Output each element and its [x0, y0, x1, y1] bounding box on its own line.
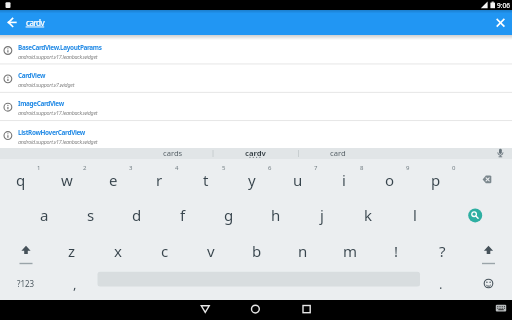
- staticText: BaseCardView.LayoutParams: [18, 43, 102, 52]
- staticText: y: [248, 170, 256, 190]
- staticText: z: [68, 241, 76, 261]
- button[interactable]: [470, 270, 506, 296]
- button[interactable]: [0, 120, 512, 148]
- button[interactable]: [0, 35, 512, 63]
- staticText: x: [114, 241, 122, 261]
- staticText: s: [87, 205, 95, 225]
- button[interactable]: [466, 162, 508, 192]
- staticText: 3: [129, 164, 133, 172]
- button[interactable]: i: [321, 162, 367, 198]
- button[interactable]: [468, 236, 508, 266]
- button[interactable]: [2, 12, 22, 33]
- button[interactable]: j: [299, 197, 345, 233]
- staticText: ?123: [17, 278, 35, 289]
- staticText: card: [330, 148, 346, 158]
- button[interactable]: t: [183, 162, 229, 198]
- button[interactable]: [490, 12, 511, 33]
- staticText: cardv: [26, 17, 45, 28]
- button[interactable]: f: [160, 197, 206, 233]
- button[interactable]: m: [327, 233, 373, 269]
- button[interactable]: ,: [60, 273, 90, 295]
- staticText: 5: [222, 164, 226, 172]
- button[interactable]: x: [95, 233, 141, 269]
- button[interactable]: [240, 300, 270, 320]
- staticText: 9:06: [497, 1, 510, 10]
- button[interactable]: [0, 64, 512, 92]
- button[interactable]: n: [280, 233, 326, 269]
- staticText: c: [161, 241, 169, 261]
- button[interactable]: q: [0, 162, 44, 198]
- staticText: android.support.v17.leanback.widget: [18, 138, 98, 145]
- button[interactable]: card: [298, 148, 378, 158]
- staticText: ?: [439, 241, 446, 261]
- staticText: m: [343, 241, 358, 261]
- staticText: j: [320, 205, 324, 225]
- staticText: k: [364, 205, 373, 225]
- staticText: 6: [268, 164, 272, 172]
- staticText: cardv: [245, 148, 266, 158]
- button[interactable]: v: [188, 233, 234, 269]
- button[interactable]: d: [114, 197, 160, 233]
- staticText: 4: [175, 164, 179, 172]
- button[interactable]: p: [413, 162, 459, 198]
- staticText: ImageCardView: [18, 99, 64, 108]
- staticText: ListRowHoverCardView: [18, 128, 85, 137]
- staticText: d: [132, 205, 142, 225]
- staticText: android.support.v17.leanback.widget: [18, 109, 98, 116]
- staticText: 1: [37, 164, 41, 172]
- staticText: 8: [360, 164, 364, 172]
- staticText: r: [156, 170, 163, 190]
- button[interactable]: l: [392, 197, 438, 233]
- staticText: u: [293, 170, 303, 190]
- staticText: 7: [314, 164, 318, 172]
- button[interactable]: .: [426, 273, 456, 295]
- button[interactable]: h: [253, 197, 299, 233]
- staticText: 9: [406, 164, 410, 172]
- button[interactable]: z: [49, 233, 95, 269]
- button[interactable]: b: [234, 233, 280, 269]
- staticText: l: [413, 205, 417, 225]
- button[interactable]: [6, 236, 46, 266]
- button[interactable]: o: [367, 162, 413, 198]
- button[interactable]: a: [21, 197, 67, 233]
- staticText: o: [385, 170, 395, 190]
- staticText: e: [109, 170, 118, 190]
- button[interactable]: w: [44, 162, 90, 198]
- staticText: h: [271, 205, 281, 225]
- button[interactable]: [291, 300, 321, 320]
- button[interactable]: !: [373, 233, 419, 269]
- button[interactable]: [97, 270, 420, 288]
- button[interactable]: r: [136, 162, 182, 198]
- staticText: cards: [163, 148, 183, 158]
- button[interactable]: ?: [419, 233, 465, 269]
- button[interactable]: [461, 201, 490, 230]
- button[interactable]: [190, 300, 220, 320]
- button[interactable]: g: [206, 197, 252, 233]
- button[interactable]: s: [68, 197, 114, 233]
- staticText: b: [252, 241, 262, 261]
- staticText: !: [394, 241, 399, 261]
- staticText: a: [40, 205, 49, 225]
- staticText: 2: [83, 164, 87, 172]
- button[interactable]: k: [345, 197, 391, 233]
- staticText: f: [180, 205, 186, 225]
- staticText: android.support.v7.widget: [18, 81, 75, 88]
- staticText: v: [207, 241, 215, 261]
- staticText: t: [203, 170, 209, 190]
- button[interactable]: c: [142, 233, 188, 269]
- button[interactable]: [0, 92, 512, 120]
- staticText: w: [61, 170, 73, 190]
- button[interactable]: e: [90, 162, 136, 198]
- staticText: android.support.v17.leanback.widget: [18, 53, 98, 60]
- staticText: n: [298, 241, 308, 261]
- button[interactable]: [24, 12, 464, 33]
- button[interactable]: cardv: [215, 148, 295, 158]
- button[interactable]: cards: [133, 148, 213, 158]
- button[interactable]: y: [229, 162, 275, 198]
- staticText: ,: [73, 275, 77, 293]
- staticText: i: [342, 170, 346, 190]
- staticText: .: [439, 275, 443, 293]
- button[interactable]: u: [275, 162, 321, 198]
- button[interactable]: ?123: [6, 273, 46, 293]
- staticText: p: [431, 170, 441, 190]
